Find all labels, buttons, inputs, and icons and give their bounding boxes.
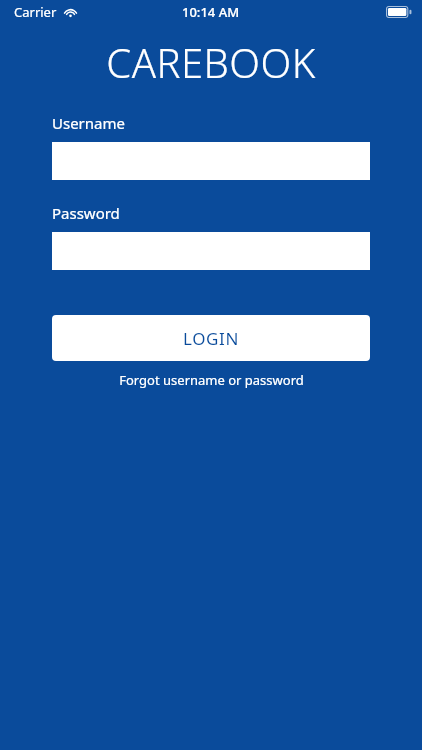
staticText: CAREBOOK (106, 35, 316, 89)
staticText: LOGIN (183, 327, 239, 350)
button[interactable]: Forgot username or password (52, 371, 370, 389)
staticText: Carrier (14, 3, 57, 21)
button[interactable]: LOGIN (52, 315, 370, 361)
staticText: Forgot username or password (119, 371, 304, 389)
staticText: 10:14 AM (182, 3, 240, 21)
staticText: Username (52, 113, 125, 133)
staticText: Password (52, 203, 120, 223)
